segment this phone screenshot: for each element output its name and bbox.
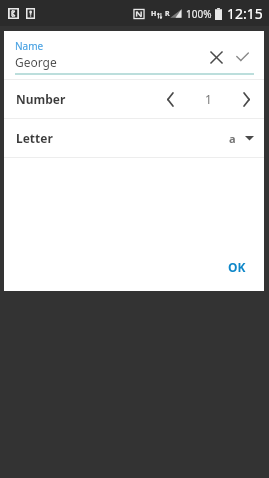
staticText: George <box>15 54 57 70</box>
staticText: H <box>151 9 157 19</box>
button[interactable]: OK <box>210 249 264 285</box>
staticText: a <box>229 131 236 146</box>
staticText: Number <box>16 91 154 107</box>
button[interactable]: Increase number <box>230 83 262 115</box>
staticText: 100% <box>186 7 212 21</box>
button[interactable]: Clear <box>203 44 229 70</box>
staticText: OK <box>228 259 246 275</box>
staticText: 12:15 <box>227 4 263 23</box>
staticText: Letter <box>16 130 229 146</box>
button[interactable]: Decrease number <box>154 83 186 115</box>
button[interactable]: Name <box>4 31 264 75</box>
staticText: R <box>165 9 170 19</box>
button[interactable]: Confirm <box>229 44 255 70</box>
staticText: Name <box>15 39 44 53</box>
staticText: 1 <box>205 91 212 107</box>
button[interactable]: Letter <box>4 119 264 157</box>
